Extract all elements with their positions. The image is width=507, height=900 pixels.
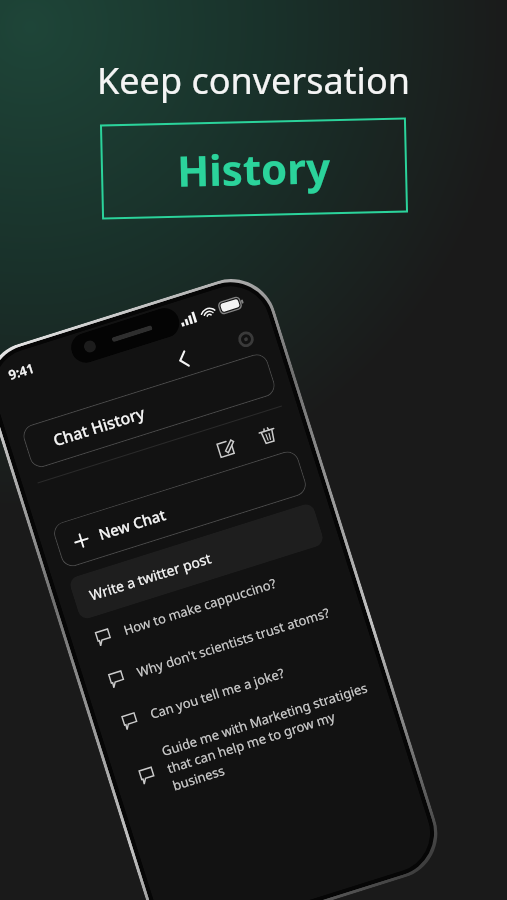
button[interactable]: Can you tell me a joke? bbox=[107, 628, 365, 747]
staticText: History bbox=[176, 138, 332, 199]
button[interactable]: Why don't scientists trust atoms? bbox=[94, 586, 352, 705]
staticText: Keep conversation bbox=[97, 56, 410, 105]
button[interactable]: Write a twitter post bbox=[68, 502, 325, 621]
staticText: Guide me with Marketing stratigies that … bbox=[159, 677, 383, 794]
staticText: New Chat bbox=[96, 504, 169, 544]
staticText: Chat History bbox=[50, 402, 147, 451]
button[interactable]: Back bbox=[162, 338, 204, 380]
staticText: Why don't scientists trust atoms? bbox=[134, 598, 348, 681]
button[interactable]: New Chat bbox=[51, 448, 309, 569]
button[interactable]: Edit bbox=[204, 427, 247, 470]
button[interactable]: Settings bbox=[227, 320, 265, 358]
staticText: Write a twitter post bbox=[87, 548, 214, 605]
button[interactable]: How to make cappuccino? bbox=[81, 544, 338, 663]
button[interactable]: Guide me with Marketing stratigies that … bbox=[121, 670, 386, 813]
staticText: How to make cappuccino? bbox=[121, 556, 334, 639]
button[interactable]: Delete bbox=[246, 414, 289, 456]
staticText: 9:41 bbox=[6, 359, 36, 384]
staticText: Can you tell me a joke? bbox=[148, 640, 361, 723]
button[interactable] bbox=[20, 351, 278, 470]
